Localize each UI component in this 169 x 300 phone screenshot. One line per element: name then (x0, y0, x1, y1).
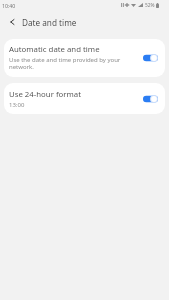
button[interactable]: Use 24-hour format (4, 83, 165, 114)
button[interactable]: Automatic date and time switch, on (143, 54, 158, 62)
button[interactable]: Use 24-hour format switch, on (143, 95, 158, 103)
staticText: 13:00 (9, 101, 25, 109)
staticText: 52% (145, 2, 155, 9)
button[interactable]: Automatic date and time (4, 39, 165, 77)
button[interactable]: Navigate up (3, 13, 20, 30)
staticText: Use 24-hour format (9, 89, 81, 100)
staticText: Automatic date and time (9, 44, 100, 55)
staticText: Date and time (22, 17, 77, 28)
staticText: 10:40 (2, 2, 16, 9)
staticText: Use the date and time provided by your n… (9, 56, 121, 71)
